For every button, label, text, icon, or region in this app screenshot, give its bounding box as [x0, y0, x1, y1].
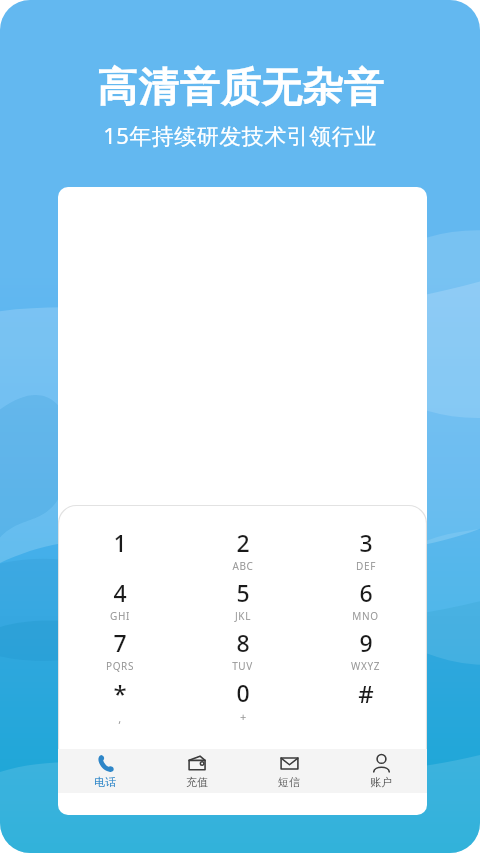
staticText: , — [118, 711, 122, 726]
staticText: JKL — [235, 609, 251, 623]
staticText: 账户 — [370, 775, 392, 789]
staticText: 电话 — [94, 775, 116, 789]
staticText: 3 — [359, 527, 373, 558]
button[interactable]: 8 — [181, 627, 304, 677]
staticText: 2 — [236, 527, 250, 558]
staticText: * — [113, 677, 127, 710]
staticText: # — [358, 677, 374, 710]
staticText: MNO — [352, 609, 379, 623]
button[interactable]: 0 — [181, 677, 304, 727]
staticText: GHI — [110, 609, 130, 623]
button[interactable]: 短信 — [243, 749, 335, 793]
staticText: 15年持续研发技术引领行业 — [103, 120, 377, 150]
button[interactable]: 1 — [58, 527, 181, 577]
button[interactable]: # — [304, 677, 427, 727]
staticText: 7 — [113, 627, 127, 658]
staticText: PQRS — [106, 659, 134, 673]
button[interactable]: 9 — [304, 627, 427, 677]
staticText: 充值 — [186, 775, 208, 789]
button[interactable]: 2 — [181, 527, 304, 577]
staticText: 0 — [236, 677, 250, 708]
staticText: 9 — [359, 627, 373, 658]
staticText: 短信 — [278, 775, 300, 789]
staticText: ABC — [232, 559, 254, 573]
button[interactable]: 电话 — [58, 749, 151, 793]
staticText: WXYZ — [351, 659, 380, 673]
button[interactable]: 3 — [304, 527, 427, 577]
button[interactable]: 充值 — [151, 749, 243, 793]
button[interactable]: 7 — [58, 627, 181, 677]
button[interactable]: 5 — [181, 577, 304, 627]
staticText: 8 — [236, 627, 250, 658]
staticText: 4 — [113, 577, 127, 608]
staticText: + — [240, 709, 247, 724]
button[interactable]: 6 — [304, 577, 427, 627]
staticText: 6 — [359, 577, 373, 608]
button[interactable]: 4 — [58, 577, 181, 627]
staticText: 1 — [113, 527, 127, 558]
button[interactable]: 账户 — [335, 749, 427, 793]
staticText: TUV — [232, 659, 253, 673]
staticText: 高清音质无杂音 — [97, 62, 384, 112]
staticText: DEF — [356, 559, 376, 573]
staticText: 5 — [236, 577, 250, 608]
button[interactable]: * — [58, 677, 181, 727]
